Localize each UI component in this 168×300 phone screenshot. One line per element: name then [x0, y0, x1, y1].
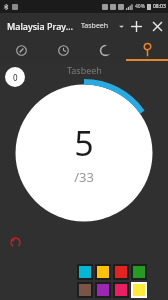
button[interactable]: Add [125, 15, 147, 37]
staticText: 0 [13, 72, 18, 83]
button[interactable]: Compass [0, 39, 42, 61]
staticText: 5 [74, 120, 94, 166]
staticText: Tasbeeh [67, 64, 102, 76]
button[interactable]: Tasbeeh [126, 39, 168, 61]
button[interactable]: Tasbeeh [81, 21, 125, 31]
staticText: 40% [135, 3, 145, 10]
button[interactable]: Close [147, 15, 168, 37]
button[interactable]: Reset [5, 232, 25, 252]
button[interactable]: Malaysia Pray… [7, 20, 73, 32]
button[interactable]: Count [10, 79, 158, 227]
staticText: 08:03 [153, 3, 166, 10]
button[interactable]: 0 [5, 67, 25, 87]
staticText: /33 [74, 168, 94, 186]
button[interactable]: Qibla [42, 39, 84, 61]
button[interactable]: Hijri calendar [84, 39, 126, 61]
staticText: Malaysia Pray… [7, 20, 73, 32]
staticText: Tasbeeh [81, 21, 109, 31]
